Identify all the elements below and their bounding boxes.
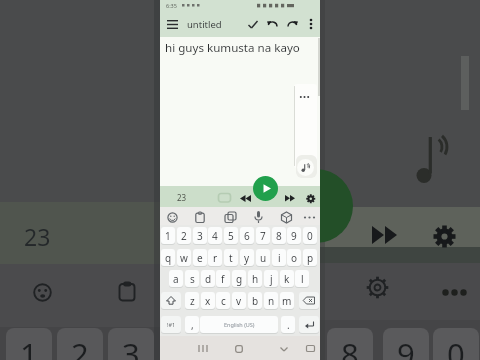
button[interactable] bbox=[167, 212, 178, 223]
button[interactable]: k bbox=[280, 270, 294, 287]
staticText: 2 bbox=[181, 229, 187, 243]
staticText: q bbox=[165, 251, 172, 265]
button[interactable] bbox=[280, 347, 288, 352]
button[interactable]: h bbox=[248, 270, 262, 287]
staticText: . bbox=[287, 318, 290, 332]
button[interactable]: 0 bbox=[303, 227, 317, 244]
staticText: 6:35 bbox=[166, 2, 177, 9]
staticText: 7 bbox=[260, 229, 266, 243]
staticText: l bbox=[301, 272, 304, 286]
staticText: 3 bbox=[122, 333, 140, 360]
button[interactable]: b bbox=[248, 292, 262, 309]
button[interactable] bbox=[161, 316, 181, 333]
button[interactable] bbox=[306, 194, 316, 204]
button[interactable] bbox=[253, 176, 278, 201]
button[interactable] bbox=[240, 195, 251, 202]
button[interactable]: w bbox=[177, 249, 191, 266]
staticText: 23 bbox=[177, 192, 187, 203]
staticText: m bbox=[282, 294, 292, 308]
button[interactable]: 2 bbox=[177, 227, 191, 244]
button[interactable] bbox=[287, 20, 298, 29]
button[interactable] bbox=[299, 292, 319, 309]
button[interactable]: c bbox=[216, 292, 230, 309]
button[interactable]: . bbox=[281, 316, 295, 333]
button[interactable]: i bbox=[272, 249, 286, 266]
button[interactable] bbox=[281, 212, 292, 223]
button[interactable]: r bbox=[208, 249, 222, 266]
button[interactable] bbox=[299, 316, 319, 333]
button[interactable]: y bbox=[240, 249, 254, 266]
button[interactable]: v bbox=[232, 292, 246, 309]
staticText: k bbox=[284, 272, 290, 286]
button[interactable] bbox=[248, 20, 258, 29]
button[interactable]: 5 bbox=[224, 227, 238, 244]
staticText: i bbox=[278, 251, 281, 265]
staticText: b bbox=[252, 294, 259, 308]
button[interactable] bbox=[285, 195, 295, 202]
button[interactable]: f bbox=[216, 270, 230, 287]
button[interactable]: g bbox=[232, 270, 246, 287]
button[interactable] bbox=[225, 212, 236, 223]
staticText: untitled bbox=[187, 18, 222, 31]
staticText: y bbox=[244, 251, 250, 265]
button[interactable]: j bbox=[264, 270, 278, 287]
button[interactable]: , bbox=[185, 316, 199, 333]
button[interactable] bbox=[303, 215, 316, 220]
button[interactable]: e bbox=[193, 249, 207, 266]
button[interactable]: m bbox=[280, 292, 294, 309]
button[interactable]: 6 bbox=[240, 227, 254, 244]
button[interactable]: 7 bbox=[256, 227, 270, 244]
button[interactable] bbox=[299, 94, 310, 100]
button[interactable] bbox=[200, 316, 278, 333]
button[interactable] bbox=[267, 20, 278, 29]
button[interactable] bbox=[167, 20, 178, 29]
staticText: a bbox=[173, 272, 179, 286]
button[interactable]: d bbox=[201, 270, 215, 287]
button[interactable] bbox=[306, 345, 315, 352]
staticText: 5 bbox=[228, 229, 234, 243]
staticText: e bbox=[197, 251, 203, 265]
staticText: 9 bbox=[397, 333, 415, 360]
staticText: n bbox=[268, 294, 275, 308]
staticText: o bbox=[291, 251, 298, 265]
staticText: 8 bbox=[276, 229, 282, 243]
button[interactable]: s bbox=[185, 270, 199, 287]
button[interactable]: n bbox=[264, 292, 278, 309]
staticText: w bbox=[180, 251, 188, 265]
button[interactable] bbox=[300, 162, 312, 173]
button[interactable] bbox=[254, 211, 263, 224]
staticText: g bbox=[236, 272, 243, 286]
button[interactable]: 3 bbox=[193, 227, 207, 244]
staticText: 0 bbox=[447, 333, 465, 360]
button[interactable]: q bbox=[161, 249, 175, 266]
staticText: English (US) bbox=[224, 321, 255, 328]
button[interactable]: 9 bbox=[287, 227, 301, 244]
staticText: t bbox=[229, 251, 233, 265]
button[interactable]: a bbox=[169, 270, 183, 287]
staticText: 2 bbox=[71, 333, 89, 360]
button[interactable]: o bbox=[287, 249, 301, 266]
staticText: !#1 bbox=[167, 321, 176, 328]
button[interactable]: 4 bbox=[208, 227, 222, 244]
button[interactable]: p bbox=[303, 249, 317, 266]
staticText: j bbox=[270, 272, 273, 286]
staticText: 9 bbox=[291, 229, 297, 243]
staticText: d bbox=[205, 272, 212, 286]
staticText: 8 bbox=[341, 333, 359, 360]
button[interactable] bbox=[235, 345, 243, 353]
button[interactable] bbox=[198, 345, 208, 352]
staticText: v bbox=[236, 294, 242, 308]
button[interactable]: l bbox=[295, 270, 309, 287]
staticText: 4 bbox=[212, 229, 218, 243]
button[interactable] bbox=[307, 18, 315, 30]
staticText: c bbox=[221, 294, 226, 308]
button[interactable]: 1 bbox=[161, 227, 175, 244]
button[interactable]: t bbox=[224, 249, 238, 266]
button[interactable]: u bbox=[256, 249, 270, 266]
button[interactable]: x bbox=[201, 292, 215, 309]
staticText: 23 bbox=[24, 221, 51, 251]
button[interactable] bbox=[161, 292, 181, 309]
button[interactable] bbox=[195, 212, 205, 223]
button[interactable]: z bbox=[185, 292, 199, 309]
button[interactable]: 8 bbox=[272, 227, 286, 244]
